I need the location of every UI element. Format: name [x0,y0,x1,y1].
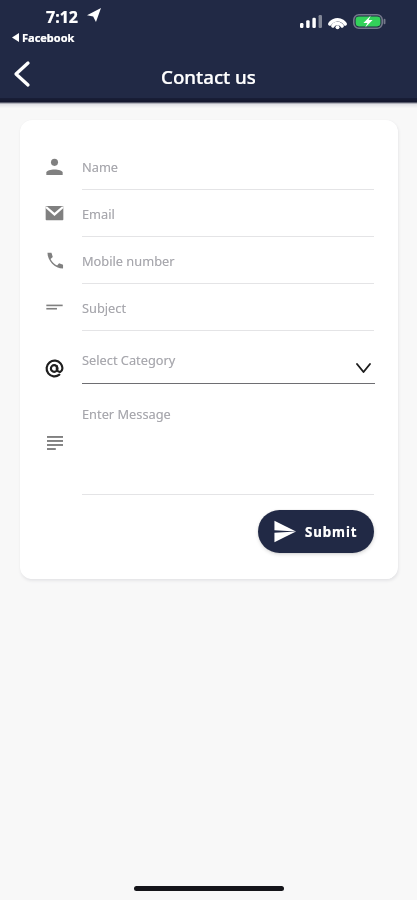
staticText: Contact us [0,64,417,89]
button[interactable]: Subject [20,283,398,330]
staticText: Enter Message [82,405,171,422]
staticText: Name [82,158,119,175]
button[interactable]: Name [20,142,398,189]
staticText: 7:12 [46,6,78,28]
button[interactable]: Submit [258,510,374,553]
button[interactable]: Mobile number [20,236,398,283]
button[interactable]: Email [20,189,398,236]
staticText: Submit [305,523,358,541]
staticText: Select Category [82,351,176,368]
button[interactable]: Back [0,51,43,96]
staticText: Mobile number [82,252,175,269]
button[interactable]: Select Category [20,330,398,383]
staticText: Subject [82,299,127,316]
staticText: Facebook [22,30,75,45]
button[interactable]: Enter Message [20,398,398,494]
staticText: Email [82,205,115,222]
